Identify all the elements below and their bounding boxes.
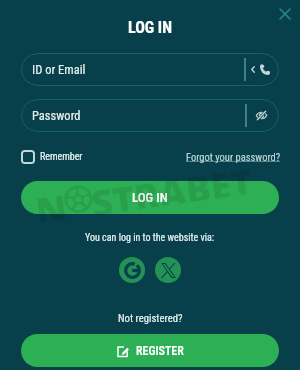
button[interactable]: Forgot your password?: [186, 151, 281, 163]
button[interactable]: LOG IN: [21, 181, 279, 214]
button[interactable]: Log in with Google: [119, 257, 145, 283]
button[interactable]: REGISTER: [21, 334, 279, 367]
staticText: LOG IN: [132, 190, 168, 205]
staticText: Not registered?: [118, 312, 183, 325]
staticText: STRABET: [88, 155, 255, 216]
staticText: LOG IN: [128, 18, 172, 37]
staticText: Password: [32, 108, 81, 123]
button[interactable]: Close: [277, 6, 293, 22]
staticText: ID or Email: [32, 62, 86, 77]
button[interactable]: Log in with X: [155, 257, 181, 283]
staticText: You can log in to the website via:: [85, 232, 215, 244]
button[interactable]: ID or Email: [21, 53, 279, 86]
staticText: Remember: [40, 151, 83, 163]
button[interactable]: Password: [21, 99, 279, 132]
staticText: N: [32, 182, 68, 223]
button[interactable]: Remember: [21, 150, 83, 164]
staticText: REGISTER: [136, 344, 184, 358]
